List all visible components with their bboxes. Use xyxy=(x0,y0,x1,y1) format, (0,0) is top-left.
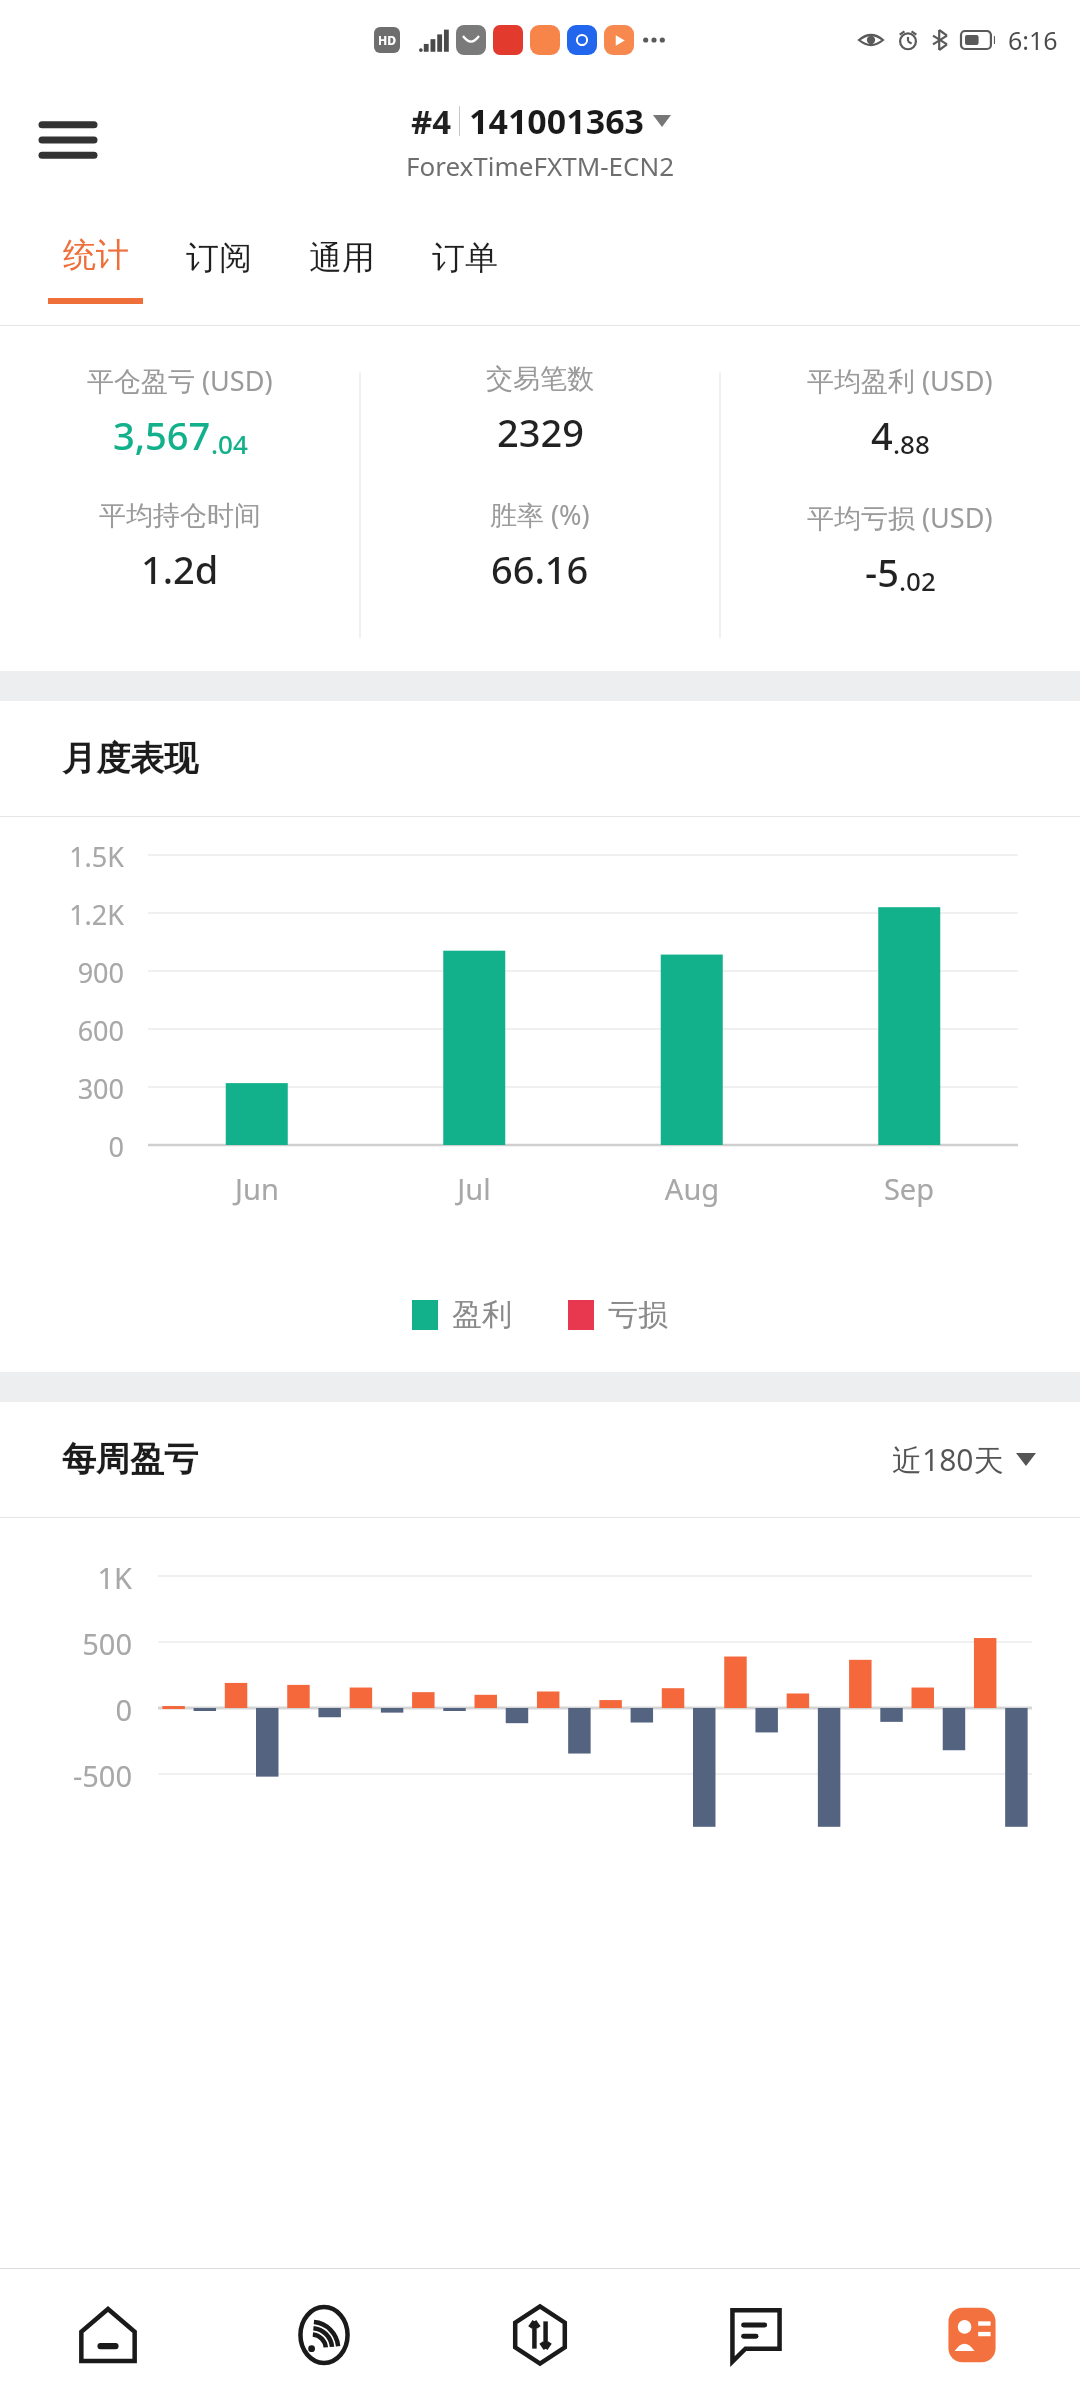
staticText: 66.16 xyxy=(491,543,589,595)
staticText: -500 xyxy=(0,1756,132,1795)
staticText: 近180天 xyxy=(892,1439,1004,1480)
staticText: HD xyxy=(378,32,396,48)
staticText: 盈利 xyxy=(452,1296,512,1334)
staticText: Aug xyxy=(632,1169,752,1208)
staticText: 900 xyxy=(0,954,124,991)
button[interactable]: 订单 xyxy=(417,200,512,325)
staticText: 每周盈亏 xyxy=(62,1438,198,1481)
button[interactable]: Contacts xyxy=(864,2269,1080,2400)
staticText: 0 xyxy=(0,1690,132,1729)
staticText: 4 xyxy=(871,409,893,461)
staticText: 订单 xyxy=(432,237,498,279)
staticText: 600 xyxy=(0,1012,124,1049)
staticText: 统计 xyxy=(63,234,129,276)
staticText: 月度表现 xyxy=(62,737,198,780)
button[interactable]: Trade xyxy=(432,2269,648,2400)
staticText: 2329 xyxy=(497,406,584,458)
staticText: 0 xyxy=(0,1128,124,1165)
staticText: ForexTimeFXTM-ECN2 xyxy=(406,148,675,183)
staticText: 交易笔数 xyxy=(486,362,594,396)
staticText: 500 xyxy=(0,1624,132,1663)
staticText: 平均亏损 (USD) xyxy=(807,499,993,536)
staticText: -5 xyxy=(865,546,899,598)
button[interactable]: 通用 xyxy=(294,200,389,325)
button[interactable]: #4 xyxy=(406,98,675,183)
staticText: 1.2K xyxy=(0,896,124,933)
button[interactable]: Messages xyxy=(648,2269,864,2400)
staticText: .02 xyxy=(899,563,936,598)
staticText: 胜率 (%) xyxy=(490,496,590,533)
staticText: 1K xyxy=(0,1558,132,1597)
button[interactable]: Menu xyxy=(30,102,106,178)
staticText: 平仓盈亏 (USD) xyxy=(87,362,273,399)
staticText: .88 xyxy=(893,426,930,461)
staticText: 通用 xyxy=(309,237,375,279)
staticText: 1.2d xyxy=(141,543,219,595)
button[interactable]: 统计 xyxy=(48,200,143,325)
staticText: 300 xyxy=(0,1070,124,1107)
staticText: 141001363 xyxy=(469,98,645,144)
button[interactable]: 盈利 xyxy=(412,1296,512,1334)
staticText: 1.5K xyxy=(0,838,124,875)
button[interactable]: 亏损 xyxy=(568,1296,668,1334)
staticText: 订阅 xyxy=(186,237,252,279)
button[interactable]: Home xyxy=(0,2269,216,2400)
staticText: Jul xyxy=(414,1169,534,1208)
staticText: 6:16 xyxy=(1008,23,1058,57)
staticText: 亏损 xyxy=(608,1296,668,1334)
button[interactable]: 近180天 xyxy=(892,1439,1036,1480)
button[interactable]: 订阅 xyxy=(171,200,266,325)
staticText: Sep xyxy=(849,1169,969,1208)
button[interactable]: Signals xyxy=(216,2269,432,2400)
staticText: 平均持仓时间 xyxy=(99,499,261,533)
staticText: 平均盈利 (USD) xyxy=(807,362,993,399)
staticText: #4 xyxy=(411,99,452,144)
staticText: .04 xyxy=(211,426,248,461)
staticText: Jun xyxy=(197,1169,317,1208)
staticText: 3,567 xyxy=(113,409,211,461)
